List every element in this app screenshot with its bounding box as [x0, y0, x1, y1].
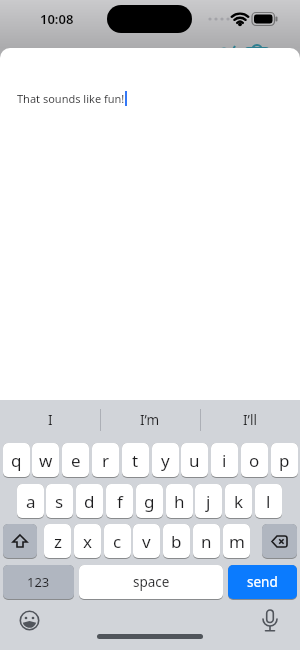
- button[interactable]: b: [163, 524, 190, 558]
- staticText: c: [113, 530, 122, 553]
- staticText: f: [117, 490, 123, 513]
- staticText: send: [247, 573, 278, 591]
- button[interactable]: I’m: [100, 400, 200, 440]
- button[interactable]: t: [122, 443, 149, 477]
- staticText: 123: [27, 573, 50, 591]
- button[interactable]: g: [136, 484, 163, 518]
- staticText: e: [71, 449, 81, 472]
- staticText: l: [266, 490, 271, 513]
- staticText: m: [229, 530, 245, 553]
- button[interactable]: y: [152, 443, 179, 477]
- button[interactable]: [3, 524, 37, 558]
- staticText: v: [142, 530, 151, 553]
- staticText: 10:08: [40, 10, 74, 28]
- button[interactable]: d: [76, 484, 103, 518]
- button[interactable]: [253, 605, 287, 639]
- staticText: r: [102, 449, 110, 472]
- button[interactable]: c: [104, 524, 131, 558]
- button[interactable]: h: [166, 484, 193, 518]
- button[interactable]: o: [241, 443, 268, 477]
- staticText: s: [55, 490, 64, 513]
- staticText: y: [161, 449, 170, 472]
- button[interactable]: w: [32, 443, 59, 477]
- button[interactable]: [12, 603, 46, 637]
- button[interactable]: p: [271, 443, 298, 477]
- button[interactable]: i: [211, 443, 238, 477]
- staticText: a: [26, 490, 36, 513]
- staticText: p: [279, 449, 290, 472]
- staticText: I: [48, 411, 53, 429]
- staticText: u: [189, 449, 200, 472]
- staticText: b: [171, 530, 182, 553]
- button[interactable]: f: [106, 484, 133, 518]
- staticText: I’ll: [243, 411, 257, 429]
- button[interactable]: space: [79, 565, 223, 599]
- button[interactable]: I’ll: [200, 400, 300, 440]
- button[interactable]: 123: [3, 565, 74, 599]
- staticText: w: [39, 449, 53, 472]
- button[interactable]: u: [181, 443, 208, 477]
- staticText: k: [234, 490, 244, 513]
- button[interactable]: a: [17, 484, 44, 518]
- button[interactable]: v: [133, 524, 160, 558]
- button[interactable]: n: [193, 524, 220, 558]
- button[interactable]: z: [44, 524, 71, 558]
- staticText: d: [84, 490, 95, 513]
- staticText: I’m: [140, 411, 160, 429]
- staticText: j: [206, 490, 211, 513]
- staticText: t: [132, 449, 139, 472]
- staticText: g: [144, 490, 155, 513]
- button[interactable]: k: [225, 484, 252, 518]
- staticText: x: [83, 530, 92, 553]
- button[interactable]: I: [0, 400, 100, 440]
- staticText: z: [54, 530, 62, 553]
- staticText: i: [222, 449, 227, 472]
- staticText: That sounds like fun!: [17, 91, 125, 106]
- button[interactable]: e: [62, 443, 89, 477]
- button[interactable]: x: [74, 524, 101, 558]
- staticText: h: [174, 490, 185, 513]
- button[interactable]: l: [255, 484, 282, 518]
- button[interactable]: m: [223, 524, 250, 558]
- button[interactable]: r: [92, 443, 119, 477]
- button[interactable]: s: [46, 484, 73, 518]
- button[interactable]: send: [228, 565, 297, 599]
- button[interactable]: [262, 524, 297, 558]
- staticText: o: [249, 449, 260, 472]
- button[interactable]: q: [3, 443, 30, 477]
- button[interactable]: j: [195, 484, 222, 518]
- staticText: q: [11, 449, 22, 472]
- staticText: space: [133, 573, 170, 591]
- staticText: n: [201, 530, 212, 553]
